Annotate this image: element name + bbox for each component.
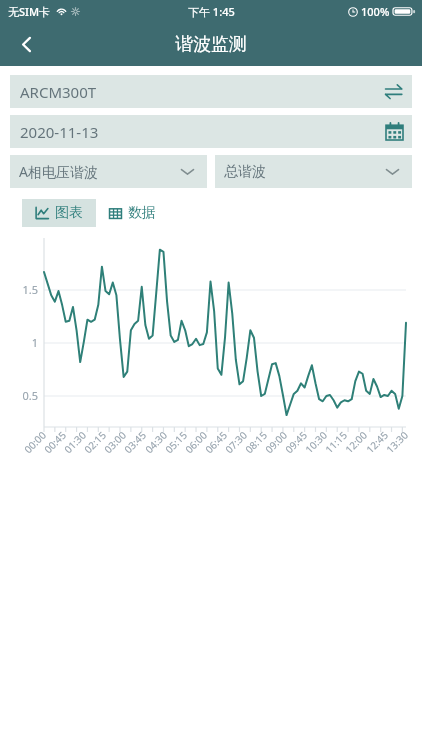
staticText: 2020-11-13 — [20, 122, 99, 142]
staticText: 02:15 — [81, 428, 109, 456]
staticText: 13:30 — [383, 428, 411, 456]
staticText: 01:30 — [61, 428, 89, 456]
staticText: 06:45 — [202, 428, 230, 456]
button[interactable]: A相电压谐波 — [10, 155, 207, 188]
staticText: 无SIM卡 — [8, 4, 51, 19]
staticText: 03:00 — [101, 428, 129, 456]
staticText: 12:45 — [363, 428, 391, 456]
button[interactable]: 图表 — [22, 199, 96, 227]
staticText: 10:30 — [302, 428, 330, 456]
staticText: 图表 — [55, 204, 83, 222]
staticText: 04:30 — [142, 428, 170, 456]
button[interactable]: 总谐波 — [215, 155, 412, 188]
button[interactable]: ARCM300T — [10, 75, 412, 108]
staticText: 05:15 — [162, 428, 190, 456]
staticText: 07:30 — [222, 428, 250, 456]
staticText: 0.5 — [4, 388, 38, 403]
button[interactable]: 返回 — [4, 22, 48, 66]
staticText: 总谐波 — [224, 163, 266, 181]
staticText: 09:45 — [282, 428, 310, 456]
staticText: 06:00 — [182, 428, 210, 456]
button[interactable]: 数据 — [96, 199, 169, 227]
staticText: 03:45 — [121, 428, 149, 456]
staticText: 00:45 — [41, 428, 69, 456]
staticText: 11:15 — [322, 428, 350, 456]
staticText: 00:00 — [21, 428, 49, 456]
staticText: 09:00 — [262, 428, 290, 456]
staticText: 12:00 — [342, 428, 370, 456]
staticText: 下午 1:45 — [188, 4, 235, 19]
staticText: 08:15 — [242, 428, 270, 456]
button[interactable]: 2020-11-13 — [10, 115, 412, 148]
staticText: 1 — [4, 335, 38, 350]
staticText: A相电压谐波 — [19, 162, 98, 181]
staticText: ARCM300T — [20, 82, 97, 102]
other: 切换设备 — [384, 82, 403, 101]
staticText: 数据 — [128, 204, 156, 222]
staticText: 1.5 — [4, 282, 38, 297]
staticText: 谐波监测 — [175, 33, 247, 56]
staticText: 100% — [361, 4, 390, 19]
other: 选择日期 — [386, 123, 403, 140]
